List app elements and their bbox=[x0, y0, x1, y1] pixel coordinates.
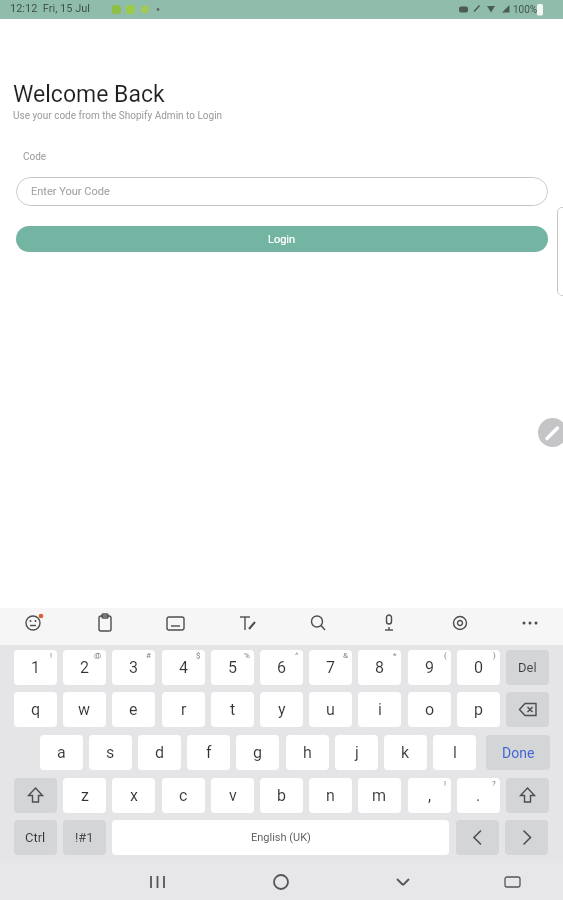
button[interactable]: 8 bbox=[358, 650, 401, 685]
button[interactable]: y bbox=[260, 692, 303, 727]
staticText: ^ bbox=[295, 651, 299, 660]
button[interactable]: q bbox=[14, 692, 57, 727]
button[interactable]: g bbox=[236, 735, 279, 770]
staticText: Enter Your Code bbox=[31, 185, 110, 198]
button[interactable]: s bbox=[89, 735, 132, 770]
staticText: 8 bbox=[375, 658, 384, 677]
button[interactable]: , bbox=[408, 778, 451, 813]
staticText: f bbox=[206, 743, 212, 762]
button[interactable]: i bbox=[358, 692, 401, 727]
staticText: , bbox=[428, 786, 432, 805]
button[interactable]: x bbox=[112, 778, 155, 813]
staticText: 0 bbox=[474, 658, 483, 677]
staticText: r bbox=[181, 700, 187, 719]
staticText: v bbox=[229, 786, 237, 805]
button[interactable]: o bbox=[408, 692, 451, 727]
button[interactable] bbox=[506, 692, 549, 727]
button[interactable]: j bbox=[335, 735, 378, 770]
staticText: Login bbox=[268, 233, 296, 246]
button[interactable]: 5 bbox=[211, 650, 254, 685]
staticText: b bbox=[277, 786, 286, 805]
button[interactable]: z bbox=[63, 778, 106, 813]
staticText: j bbox=[355, 743, 359, 762]
button[interactable]: r bbox=[162, 692, 205, 727]
button[interactable]: 3 bbox=[112, 650, 155, 685]
button[interactable]: v bbox=[211, 778, 254, 813]
staticText: 12:12 Fri, 15 Jul bbox=[10, 2, 90, 15]
button[interactable]: 1 bbox=[14, 650, 57, 685]
button[interactable]: 4 bbox=[162, 650, 205, 685]
staticText: e bbox=[129, 700, 138, 719]
button[interactable] bbox=[538, 418, 563, 447]
staticText: % bbox=[244, 651, 250, 660]
staticText: ? bbox=[492, 779, 496, 788]
button[interactable]: Del bbox=[506, 650, 549, 685]
button[interactable]: h bbox=[286, 735, 329, 770]
button[interactable]: Ctrl bbox=[14, 820, 57, 855]
button[interactable]: k bbox=[384, 735, 427, 770]
button[interactable]: f bbox=[187, 735, 230, 770]
staticText: q bbox=[31, 700, 41, 719]
button[interactable]: . bbox=[457, 778, 500, 813]
staticText: c bbox=[179, 786, 188, 805]
staticText: m bbox=[372, 786, 387, 805]
button[interactable]: 0 bbox=[457, 650, 500, 685]
staticText: w bbox=[78, 700, 91, 719]
button[interactable]: a bbox=[40, 735, 83, 770]
staticText: 1 bbox=[31, 658, 40, 677]
staticText: 2 bbox=[80, 658, 89, 677]
button[interactable]: w bbox=[63, 692, 106, 727]
staticText: * bbox=[393, 651, 397, 660]
staticText: n bbox=[326, 786, 335, 805]
button[interactable]: n bbox=[309, 778, 352, 813]
staticText: . bbox=[476, 786, 481, 805]
staticText: 6 bbox=[277, 658, 286, 677]
button[interactable]: 9 bbox=[408, 650, 451, 685]
staticText: 7 bbox=[326, 658, 335, 677]
button[interactable]: t bbox=[211, 692, 254, 727]
button[interactable]: 7 bbox=[309, 650, 352, 685]
staticText: 3 bbox=[129, 658, 138, 677]
staticText: u bbox=[326, 700, 335, 719]
staticText: ) bbox=[493, 651, 496, 660]
staticText: t bbox=[230, 700, 236, 719]
button[interactable]: 2 bbox=[63, 650, 106, 685]
button[interactable] bbox=[506, 778, 549, 813]
staticText: & bbox=[343, 651, 348, 660]
staticText: z bbox=[81, 786, 89, 805]
staticText: x bbox=[130, 786, 138, 805]
staticText: Done bbox=[502, 745, 535, 761]
staticText: ( bbox=[444, 651, 447, 660]
button[interactable]: p bbox=[457, 692, 500, 727]
staticText: s bbox=[106, 743, 115, 762]
button[interactable]: u bbox=[309, 692, 352, 727]
staticText: p bbox=[474, 700, 483, 719]
button[interactable]: b bbox=[260, 778, 303, 813]
button[interactable] bbox=[505, 820, 548, 855]
button[interactable]: 6 bbox=[260, 650, 303, 685]
staticText: !#1 bbox=[75, 830, 94, 845]
staticText: 9 bbox=[425, 658, 434, 677]
staticText: Ctrl bbox=[25, 830, 46, 845]
button[interactable]: m bbox=[358, 778, 401, 813]
button[interactable]: l bbox=[433, 735, 476, 770]
staticText: 4 bbox=[179, 658, 188, 677]
button[interactable]: Enter Your Code bbox=[16, 177, 548, 206]
button[interactable]: English (UK) bbox=[112, 820, 449, 855]
button[interactable]: !#1 bbox=[63, 820, 106, 855]
button[interactable] bbox=[456, 820, 499, 855]
staticText: o bbox=[425, 700, 435, 719]
button[interactable]: Login bbox=[16, 226, 548, 252]
staticText: a bbox=[57, 743, 66, 762]
staticText: @ bbox=[94, 651, 102, 660]
button[interactable] bbox=[14, 778, 57, 813]
staticText: l bbox=[453, 743, 457, 762]
staticText: h bbox=[303, 743, 312, 762]
staticText: 100% bbox=[513, 4, 538, 16]
button[interactable]: c bbox=[162, 778, 205, 813]
staticText: k bbox=[401, 743, 410, 762]
button[interactable]: e bbox=[112, 692, 155, 727]
staticText: $ bbox=[196, 651, 201, 660]
button[interactable]: d bbox=[138, 735, 181, 770]
button[interactable]: Done bbox=[486, 735, 550, 770]
